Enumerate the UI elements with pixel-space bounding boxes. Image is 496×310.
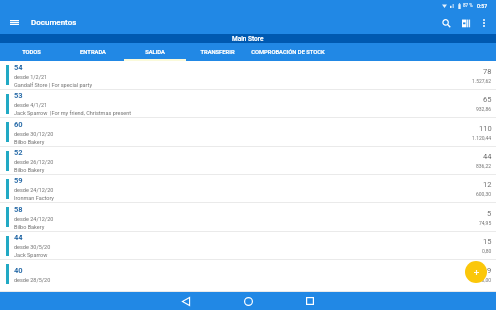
staticText: 44 xyxy=(483,152,492,161)
staticText: desde 26/12/20 xyxy=(14,159,54,165)
staticText: desde 24/12/20 xyxy=(14,187,54,193)
staticText: Ironman Factory xyxy=(14,195,54,201)
button[interactable]: ENTRADA xyxy=(62,43,124,61)
button[interactable]: Search xyxy=(437,14,455,32)
staticText: 52 xyxy=(14,148,23,157)
button[interactable]: 44 xyxy=(0,232,496,260)
staticText: 932,86 xyxy=(476,106,492,112)
staticText: 54 xyxy=(14,63,23,72)
staticText: 836,22 xyxy=(476,163,492,169)
staticText: desde 28/5/20 xyxy=(14,277,51,283)
staticText: 40 xyxy=(14,266,23,275)
staticText: ENTRADA xyxy=(80,49,106,56)
staticText: desde 30/12/20 xyxy=(14,131,54,137)
staticText: Bilbo Bakery xyxy=(14,224,45,230)
button[interactable]: 53 xyxy=(0,90,496,118)
staticText: desde 1/2/21 xyxy=(14,74,48,80)
button[interactable]: 54 xyxy=(0,61,496,90)
staticText: 87 % xyxy=(463,3,473,8)
staticText: 74,95 xyxy=(479,220,492,226)
staticText: desde 24/12/20 xyxy=(14,216,54,222)
button[interactable]: Add xyxy=(465,261,487,283)
button[interactable]: 52 xyxy=(0,147,496,175)
staticText: Jack Sparrow |For my friend, Christmas p… xyxy=(14,110,132,116)
button[interactable]: Back xyxy=(173,292,199,310)
button[interactable]: 40 xyxy=(0,260,496,292)
staticText: Jack Sparrow xyxy=(14,252,48,258)
staticText: 44 xyxy=(14,233,23,242)
button[interactable]: COMPROBACIÓN DE STOCK xyxy=(248,43,328,61)
staticText: 1.527,62 xyxy=(472,78,492,84)
staticText: 150,00 xyxy=(476,277,492,283)
staticText: 1.120,44 xyxy=(472,135,492,141)
staticText: Bilbo Bakery xyxy=(14,167,45,173)
button[interactable]: Reports xyxy=(457,14,475,32)
staticText: 58 xyxy=(14,205,23,214)
button[interactable]: More options xyxy=(476,15,492,31)
staticText: 9 xyxy=(487,266,492,275)
button[interactable]: Recents xyxy=(297,292,323,310)
staticText: 65 xyxy=(483,95,492,104)
staticText: SALIDA xyxy=(145,49,165,56)
staticText: TRANSFERIR xyxy=(200,49,235,56)
staticText: 59 xyxy=(14,176,23,185)
staticText: 0:57 xyxy=(477,3,488,9)
staticText: 78 xyxy=(483,67,492,76)
staticText: TODOS xyxy=(22,49,41,56)
staticText: 600,30 xyxy=(476,191,492,197)
staticText: Gandalf Store | For special party xyxy=(14,82,93,88)
button[interactable]: Home xyxy=(235,292,261,310)
button[interactable]: TODOS xyxy=(0,43,62,61)
button[interactable]: SALIDA xyxy=(124,43,186,61)
staticText: 53 xyxy=(14,91,23,100)
staticText: 15 xyxy=(483,237,492,246)
staticText: 12 xyxy=(483,180,492,189)
staticText: Bilbo Bakery xyxy=(14,139,45,145)
staticText: Main Store xyxy=(232,35,264,43)
button[interactable]: 60 xyxy=(0,118,496,147)
staticText: 60 xyxy=(14,120,23,129)
button[interactable]: Menu xyxy=(5,14,23,32)
staticText: 5 xyxy=(487,209,492,218)
staticText: desde 30/5/20 xyxy=(14,244,51,250)
button[interactable]: TRANSFERIR xyxy=(186,43,248,61)
staticText: Documentos xyxy=(31,18,77,27)
staticText: desde 4/1/21 xyxy=(14,102,48,108)
staticText: 110 xyxy=(479,124,492,133)
button[interactable]: 59 xyxy=(0,175,496,203)
staticText: 0,80 xyxy=(482,248,492,254)
staticText: COMPROBACIÓN DE STOCK xyxy=(251,49,325,56)
button[interactable]: 58 xyxy=(0,203,496,232)
